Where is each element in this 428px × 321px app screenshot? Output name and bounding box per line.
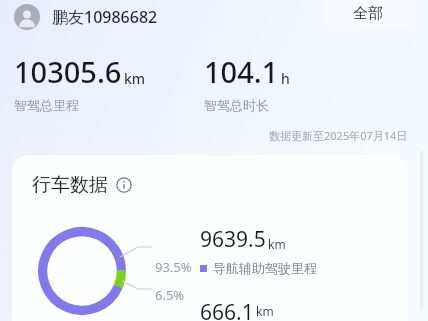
staticText: 666.1: [200, 298, 254, 321]
staticText: 104.1: [204, 52, 279, 91]
staticText: 9639.5: [200, 225, 266, 254]
staticText: 导航辅助驾驶里程: [213, 260, 317, 276]
staticText: 10305.6: [14, 52, 122, 91]
staticText: 93.5%: [155, 258, 192, 276]
staticText: 智驾总时长: [204, 97, 269, 113]
button[interactable]: 10305.6: [14, 52, 204, 113]
button[interactable]: 行车数据: [32, 173, 132, 197]
staticText: 鹏友10986682: [52, 6, 158, 28]
staticText: h: [281, 69, 290, 88]
staticText: km: [256, 303, 274, 319]
staticText: 6.5%: [155, 286, 185, 304]
staticText: 行车数据: [32, 173, 108, 197]
staticText: km: [268, 236, 286, 252]
button[interactable]: 鹏友10986682: [14, 4, 158, 30]
button[interactable]: 信息说明: [116, 177, 132, 193]
button[interactable]: 104.1: [204, 52, 394, 113]
staticText: 智驾总里程: [14, 97, 79, 113]
staticText: km: [124, 69, 146, 88]
button[interactable]: 全部: [322, 0, 414, 30]
staticText: 数据更新至2025年07月14日: [269, 128, 408, 143]
staticText: 全部: [353, 4, 383, 23]
